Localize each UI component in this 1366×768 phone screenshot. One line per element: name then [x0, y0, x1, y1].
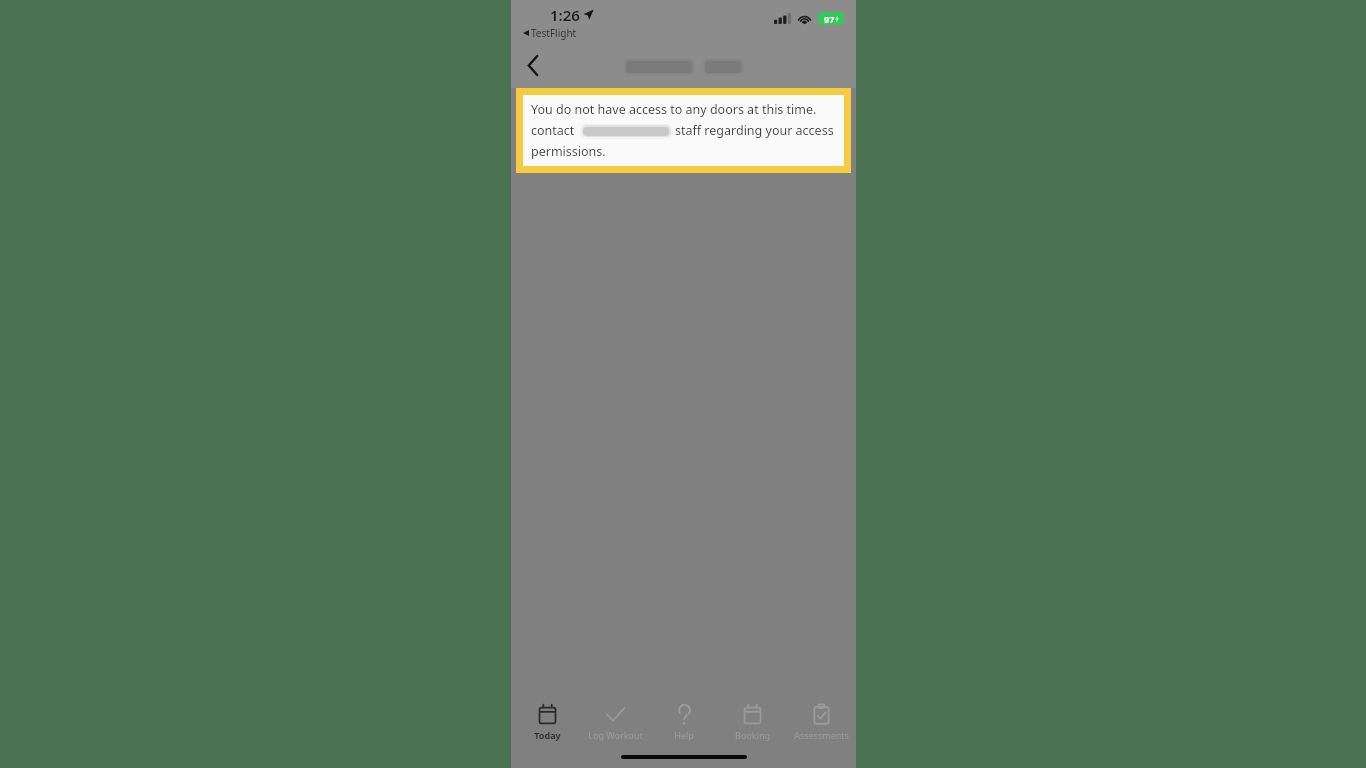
staticText: Booking	[735, 729, 770, 741]
staticText: Assessments	[794, 729, 849, 741]
button[interactable]: Assessments	[788, 701, 854, 744]
button[interactable]: You do not have access to any doors at t…	[523, 95, 844, 166]
button[interactable]: Booking	[719, 701, 785, 744]
staticText: Today	[534, 729, 561, 741]
staticText: You do not have access to any doors at t…	[531, 101, 836, 118]
staticText: TestFlight	[531, 26, 577, 40]
button[interactable]: Help	[651, 701, 717, 744]
staticText: contact	[531, 122, 575, 139]
button[interactable]: Back	[515, 47, 551, 83]
staticText: Log Workout	[588, 729, 643, 741]
staticText: permissions.	[531, 143, 606, 160]
button[interactable]: Log Workout	[582, 701, 648, 744]
staticText: 97	[824, 13, 835, 25]
staticText: 1:26	[550, 5, 580, 25]
staticText: staff regarding your access	[675, 122, 834, 139]
button[interactable]: Today	[514, 701, 580, 744]
staticText: Help	[674, 729, 694, 741]
